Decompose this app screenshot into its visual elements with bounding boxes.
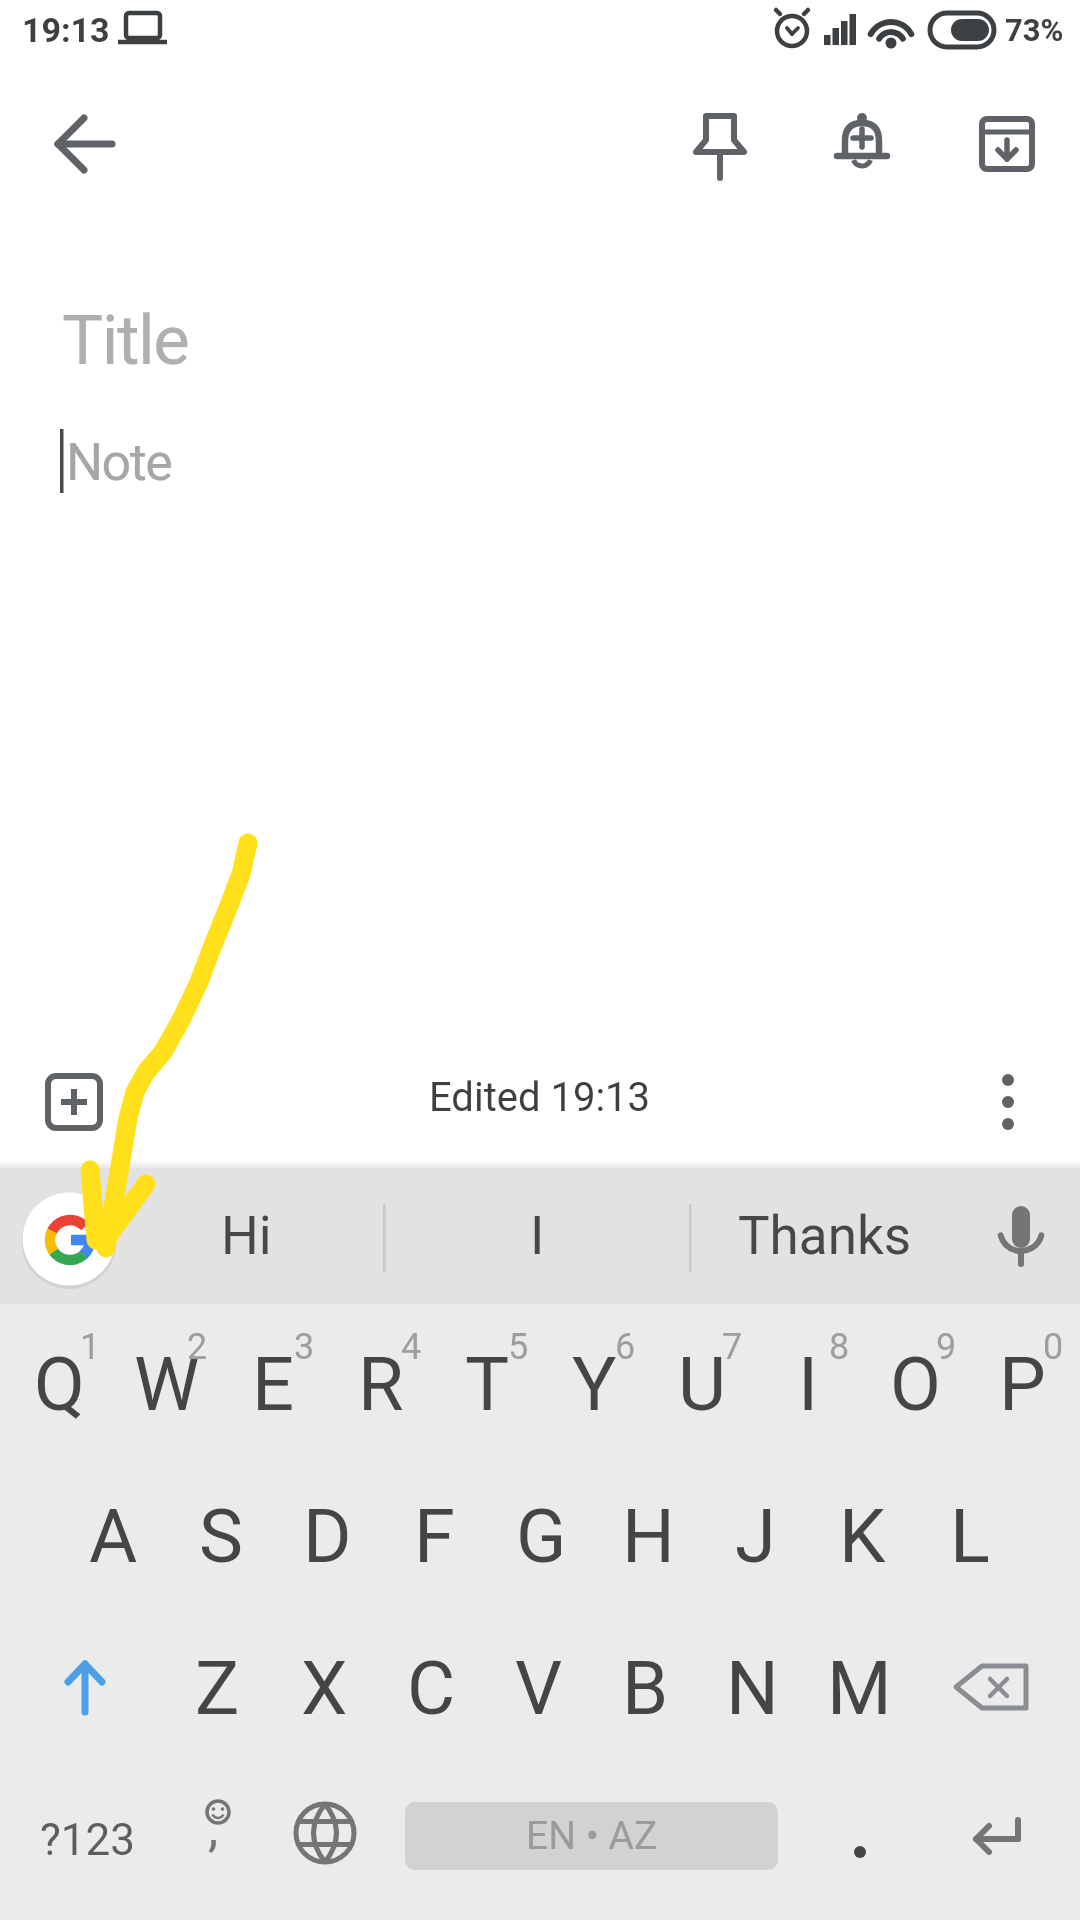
staticText: J xyxy=(735,1493,776,1580)
staticText: 3 xyxy=(294,1326,315,1366)
button[interactable] xyxy=(20,1190,120,1290)
staticText: ?123 xyxy=(40,1814,135,1866)
button[interactable] xyxy=(48,106,124,182)
staticText: F xyxy=(414,1493,455,1580)
staticText: Y xyxy=(572,1341,617,1428)
button[interactable]: Hi xyxy=(120,1180,373,1292)
button[interactable] xyxy=(271,1766,378,1914)
staticText: 6 xyxy=(615,1326,636,1366)
staticText: X xyxy=(301,1645,348,1732)
staticText: 2 xyxy=(187,1326,208,1366)
staticText: Edited 19:13 xyxy=(429,1074,651,1121)
staticText: 19:13 xyxy=(22,10,110,50)
staticText: 4 xyxy=(401,1326,422,1366)
button[interactable]: V xyxy=(485,1614,592,1762)
staticText: I xyxy=(530,1205,545,1267)
button[interactable] xyxy=(24,1614,149,1762)
staticText: C xyxy=(407,1645,456,1732)
button[interactable] xyxy=(975,1190,1070,1290)
button[interactable]: I xyxy=(755,1310,862,1458)
button[interactable]: G xyxy=(488,1462,595,1610)
staticText: S xyxy=(199,1493,243,1580)
staticText: U xyxy=(678,1341,726,1428)
button[interactable]: B xyxy=(592,1614,699,1762)
staticText: L xyxy=(950,1493,990,1580)
staticText: D xyxy=(303,1493,352,1580)
staticText: P xyxy=(999,1341,1046,1428)
staticText: O xyxy=(890,1341,941,1428)
button[interactable]: ?123 xyxy=(24,1766,150,1914)
staticText: EN • AZ xyxy=(526,1813,658,1859)
staticText: Note xyxy=(66,432,172,493)
staticText: A xyxy=(89,1493,138,1580)
staticText: Q xyxy=(34,1341,85,1428)
staticText: M xyxy=(827,1645,892,1732)
button[interactable]: U xyxy=(648,1310,755,1458)
staticText: 5 xyxy=(508,1326,529,1366)
button[interactable]: N xyxy=(699,1614,806,1762)
button[interactable]: D xyxy=(274,1462,381,1610)
button[interactable] xyxy=(972,1064,1048,1140)
staticText: N xyxy=(726,1645,779,1732)
button[interactable]: K xyxy=(809,1462,916,1610)
button[interactable]: W xyxy=(113,1310,220,1458)
button[interactable] xyxy=(36,1064,112,1140)
staticText: K xyxy=(839,1493,886,1580)
staticText: 1 xyxy=(80,1326,101,1366)
button[interactable]: M xyxy=(806,1614,913,1762)
staticText: R xyxy=(358,1341,404,1428)
button[interactable]: Q xyxy=(6,1310,113,1458)
staticText: T xyxy=(465,1341,510,1428)
button[interactable]: X xyxy=(271,1614,378,1762)
button[interactable] xyxy=(682,106,758,182)
button[interactable] xyxy=(930,1766,1058,1914)
staticText: Thanks xyxy=(738,1205,912,1267)
button[interactable]: E xyxy=(220,1310,327,1458)
button[interactable]: Y xyxy=(541,1310,648,1458)
button[interactable] xyxy=(928,1614,1058,1762)
button[interactable] xyxy=(824,106,900,182)
staticText: 9 xyxy=(936,1326,957,1366)
staticText: 7 xyxy=(722,1326,743,1366)
button[interactable]: Thanks xyxy=(685,1180,965,1292)
button[interactable]: S xyxy=(167,1462,274,1610)
button[interactable] xyxy=(806,1766,913,1914)
button[interactable]: T xyxy=(434,1310,541,1458)
staticText: Title xyxy=(62,300,189,381)
button[interactable] xyxy=(968,106,1044,182)
button[interactable]: P xyxy=(969,1310,1076,1458)
staticText: B xyxy=(622,1645,669,1732)
staticText: 0 xyxy=(1043,1326,1064,1366)
button[interactable]: EN • AZ xyxy=(405,1802,778,1870)
staticText: G xyxy=(516,1493,567,1580)
staticText: V xyxy=(515,1645,563,1732)
staticText: 8 xyxy=(829,1326,850,1366)
button[interactable]: A xyxy=(60,1462,167,1610)
staticText: Hi xyxy=(221,1205,272,1267)
staticText: , xyxy=(208,1798,219,1859)
staticText: W xyxy=(134,1341,200,1428)
button[interactable]: J xyxy=(702,1462,809,1610)
button[interactable]: L xyxy=(916,1462,1023,1610)
button[interactable]: O xyxy=(862,1310,969,1458)
button[interactable]: F xyxy=(381,1462,488,1610)
button[interactable]: Z xyxy=(164,1614,271,1762)
staticText: Z xyxy=(195,1645,240,1732)
button[interactable]: I xyxy=(385,1180,689,1292)
staticText: E xyxy=(252,1341,295,1428)
button[interactable]: R xyxy=(327,1310,434,1458)
button[interactable]: C xyxy=(378,1614,485,1762)
button[interactable]: H xyxy=(595,1462,702,1610)
staticText: I xyxy=(798,1341,819,1428)
button[interactable] xyxy=(164,1766,271,1914)
staticText: 73% xyxy=(1005,12,1064,48)
staticText: H xyxy=(622,1493,675,1580)
